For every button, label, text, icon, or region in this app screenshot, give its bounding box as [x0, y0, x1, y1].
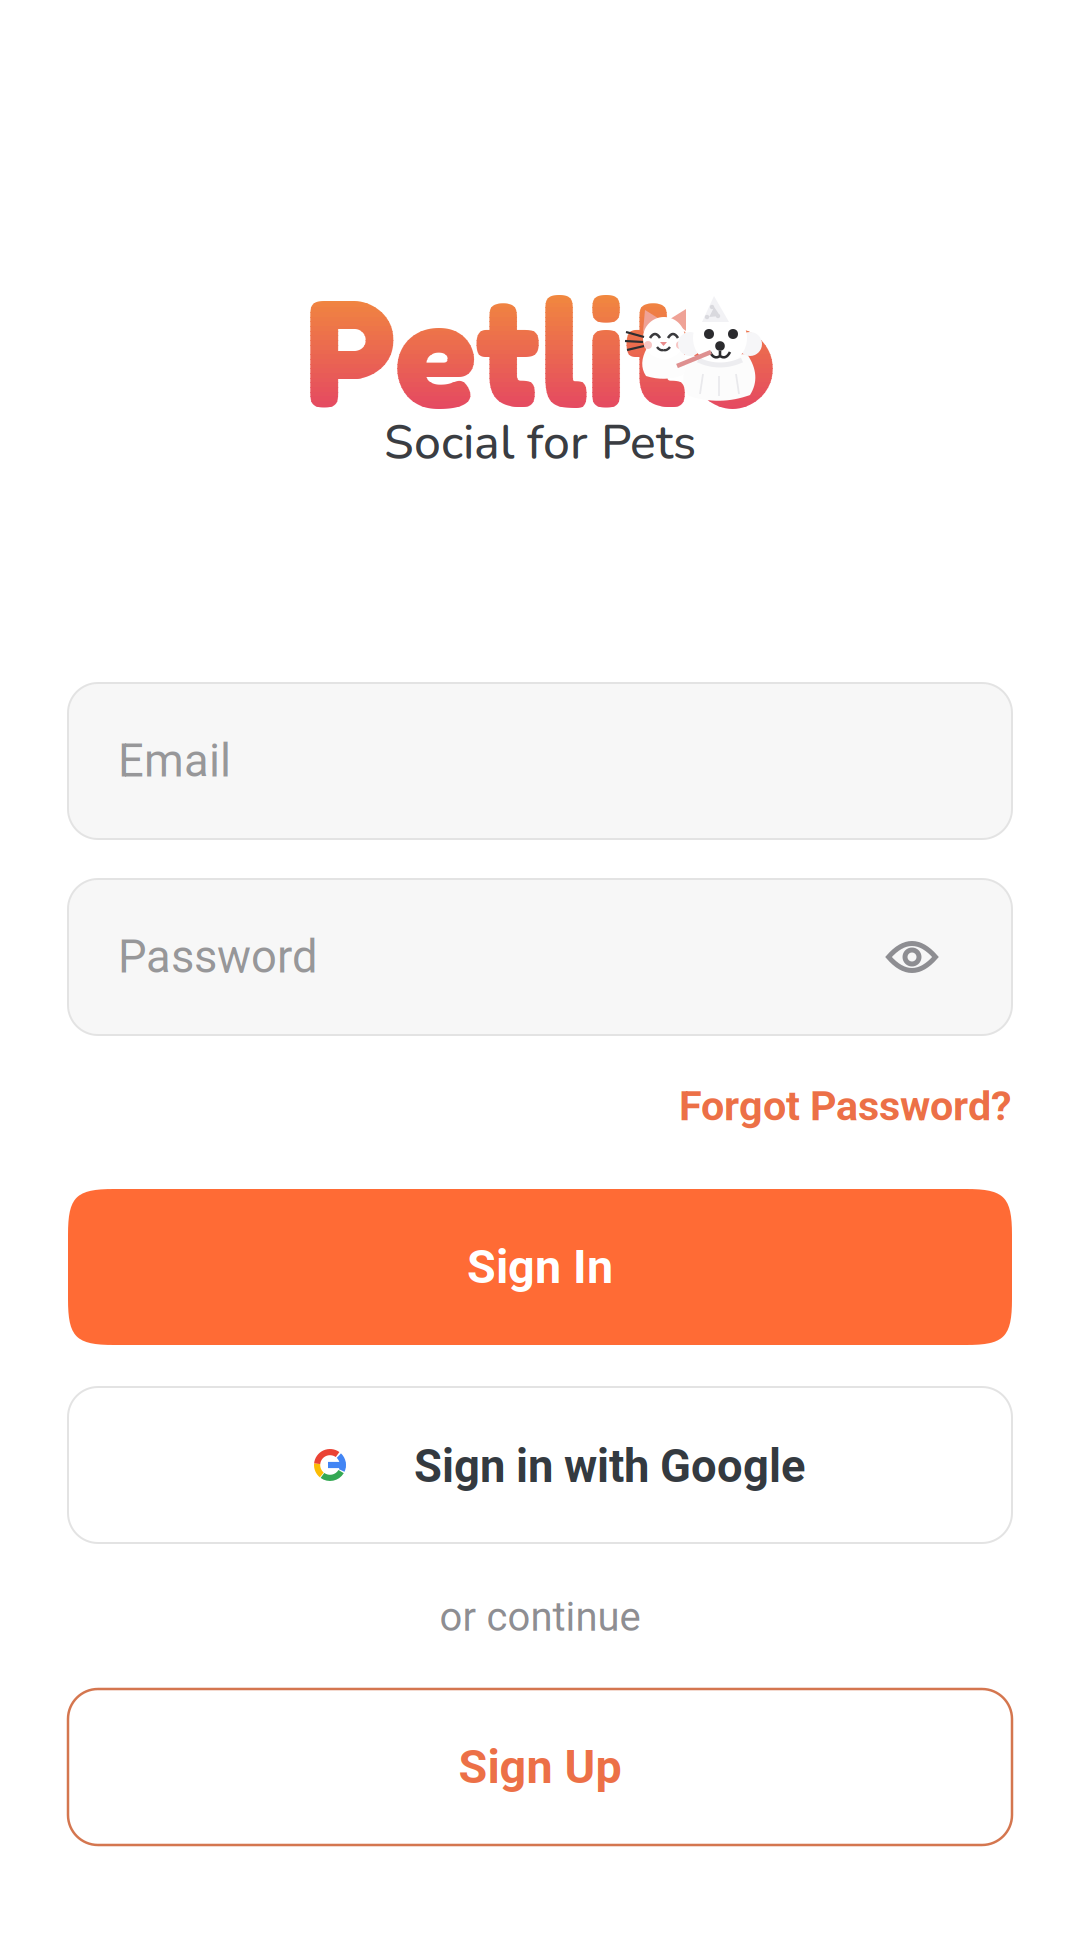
button[interactable]: Forgot Password? [679, 1082, 1012, 1130]
staticText: Petlito [305, 258, 775, 442]
staticText: Petlito [305, 258, 775, 442]
button[interactable]: Sign In [68, 1189, 1012, 1345]
staticText: Petlito [305, 258, 775, 442]
staticText: Sign in with Google [414, 1440, 805, 1493]
staticText: Petlito [305, 258, 775, 442]
staticText: Petlito [305, 258, 775, 442]
staticText: Social for Pets [384, 410, 696, 476]
staticText: Petlito [305, 258, 775, 442]
button[interactable]: Show password [874, 919, 950, 995]
staticText: Petlito [305, 258, 775, 442]
staticText: Email [118, 734, 231, 787]
staticText: Sign In [467, 1240, 613, 1294]
staticText: Petlito [305, 258, 775, 442]
staticText: Petlito [305, 258, 775, 442]
staticText: Petlito [305, 258, 775, 442]
staticText: Petlito [305, 258, 775, 442]
staticText: Petlito [305, 258, 775, 442]
staticText: Petlito [305, 258, 775, 442]
staticText: Petlito [305, 258, 775, 442]
staticText: Forgot Password? [679, 1082, 1012, 1130]
staticText: Petlito [305, 258, 775, 442]
staticText: Petlito [305, 258, 775, 442]
staticText: Petlito [305, 258, 775, 442]
staticText: Petlito [305, 258, 775, 442]
button[interactable]: Sign in with Google [68, 1387, 1012, 1543]
staticText: Password [118, 930, 318, 983]
staticText: Petlito [305, 258, 775, 442]
staticText: Petlito [305, 258, 775, 442]
staticText: Petlito [305, 258, 775, 442]
staticText: or continue [439, 1594, 640, 1640]
staticText: Sign Up [458, 1740, 621, 1794]
staticText: Petlito [305, 258, 775, 442]
button[interactable]: Sign Up [68, 1689, 1012, 1845]
staticText: Petlito [305, 258, 775, 442]
staticText: Petlito [305, 258, 775, 442]
staticText: Petlito [305, 258, 775, 442]
staticText: Petlito [305, 258, 775, 442]
